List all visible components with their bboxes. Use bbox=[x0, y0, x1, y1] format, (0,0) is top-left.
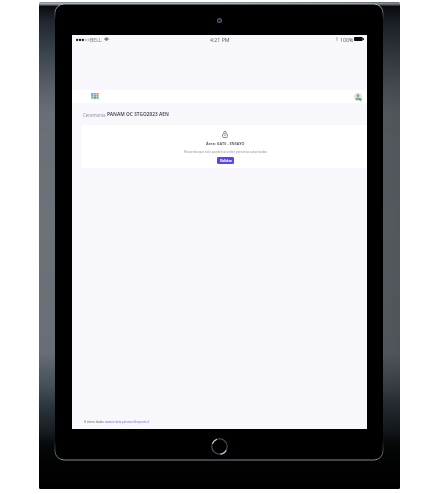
staticText: Validar bbox=[220, 158, 232, 163]
staticText: 100% bbox=[340, 36, 354, 43]
button[interactable]: Logo bbox=[91, 93, 99, 99]
button[interactable]: Account bbox=[354, 93, 362, 101]
staticText: Área: GATE - ENSAYO bbox=[206, 141, 245, 146]
staticText: 4:21 PM bbox=[210, 36, 230, 43]
staticText: BELL bbox=[90, 36, 102, 43]
staticText: PANAM OC STGO2023 AEN bbox=[107, 111, 169, 118]
button[interactable]: Home bbox=[211, 438, 228, 455]
button[interactable]: Validar bbox=[217, 157, 234, 164]
staticText: Recuerda que solo pueden acceder persona… bbox=[184, 150, 267, 154]
staticText: Si tienes dudas bbox=[84, 420, 105, 424]
staticText: Ceremonia bbox=[83, 112, 107, 118]
button[interactable]: www.tickets.panamchilesports.cl bbox=[105, 420, 150, 424]
